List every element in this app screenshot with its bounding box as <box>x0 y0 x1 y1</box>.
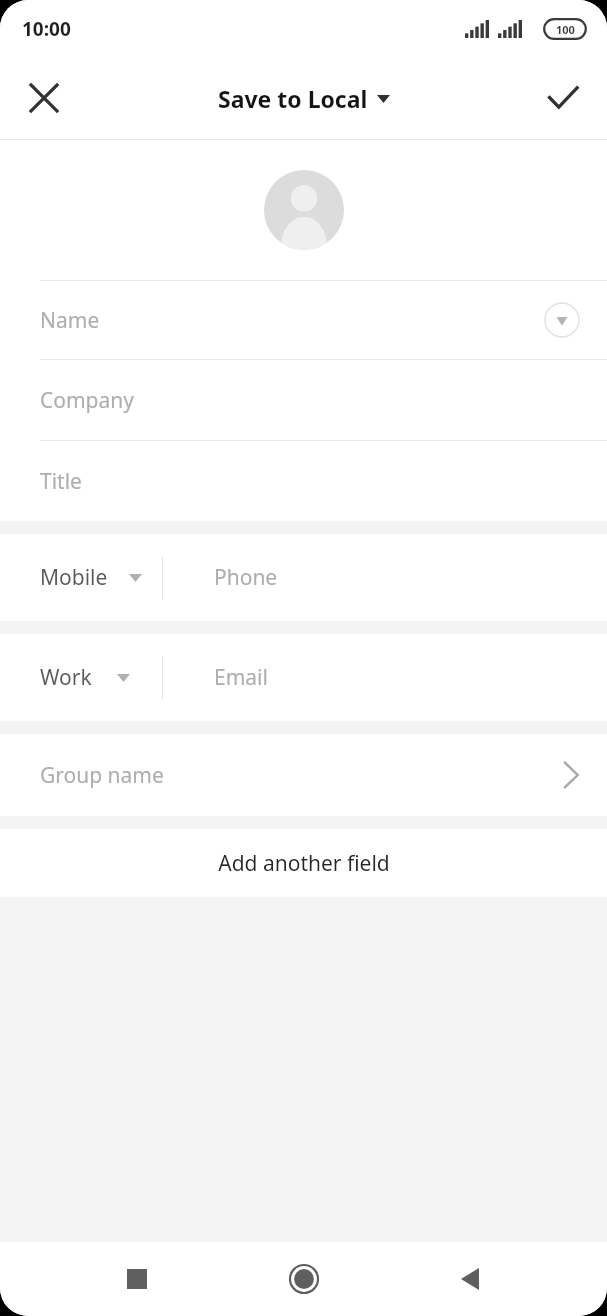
staticText: 100 <box>556 22 575 37</box>
button[interactable]: Title <box>0 441 607 521</box>
staticText: Add another field <box>218 849 390 878</box>
button[interactable]: Add another field <box>0 829 607 897</box>
button[interactable]: Save to Local <box>210 77 398 120</box>
button[interactable]: Name <box>0 281 607 359</box>
button[interactable]: Home <box>274 1249 334 1309</box>
staticText: Name <box>40 306 100 335</box>
staticText: Group name <box>40 761 164 790</box>
staticText: Title <box>40 467 82 496</box>
button[interactable]: Group name <box>0 734 607 816</box>
button[interactable]: Contact photo <box>264 170 344 250</box>
staticText: Work <box>40 663 92 692</box>
staticText: 10:00 <box>22 16 71 42</box>
button[interactable]: Recent apps <box>107 1249 167 1309</box>
staticText: Phone <box>214 563 278 592</box>
button[interactable]: Company <box>0 360 607 440</box>
staticText: Email <box>214 663 268 692</box>
staticText: Save to Local <box>218 83 368 114</box>
button[interactable]: Close <box>16 70 72 126</box>
button[interactable]: Mobile <box>0 534 162 621</box>
button[interactable]: Save <box>535 70 591 126</box>
button[interactable]: Back <box>440 1249 500 1309</box>
staticText: Company <box>40 386 134 415</box>
button[interactable]: Work <box>0 634 162 721</box>
button[interactable]: Phone <box>163 534 607 621</box>
button[interactable]: Email <box>163 634 607 721</box>
button[interactable]: Expand name fields <box>544 302 580 338</box>
staticText: Mobile <box>40 563 108 592</box>
